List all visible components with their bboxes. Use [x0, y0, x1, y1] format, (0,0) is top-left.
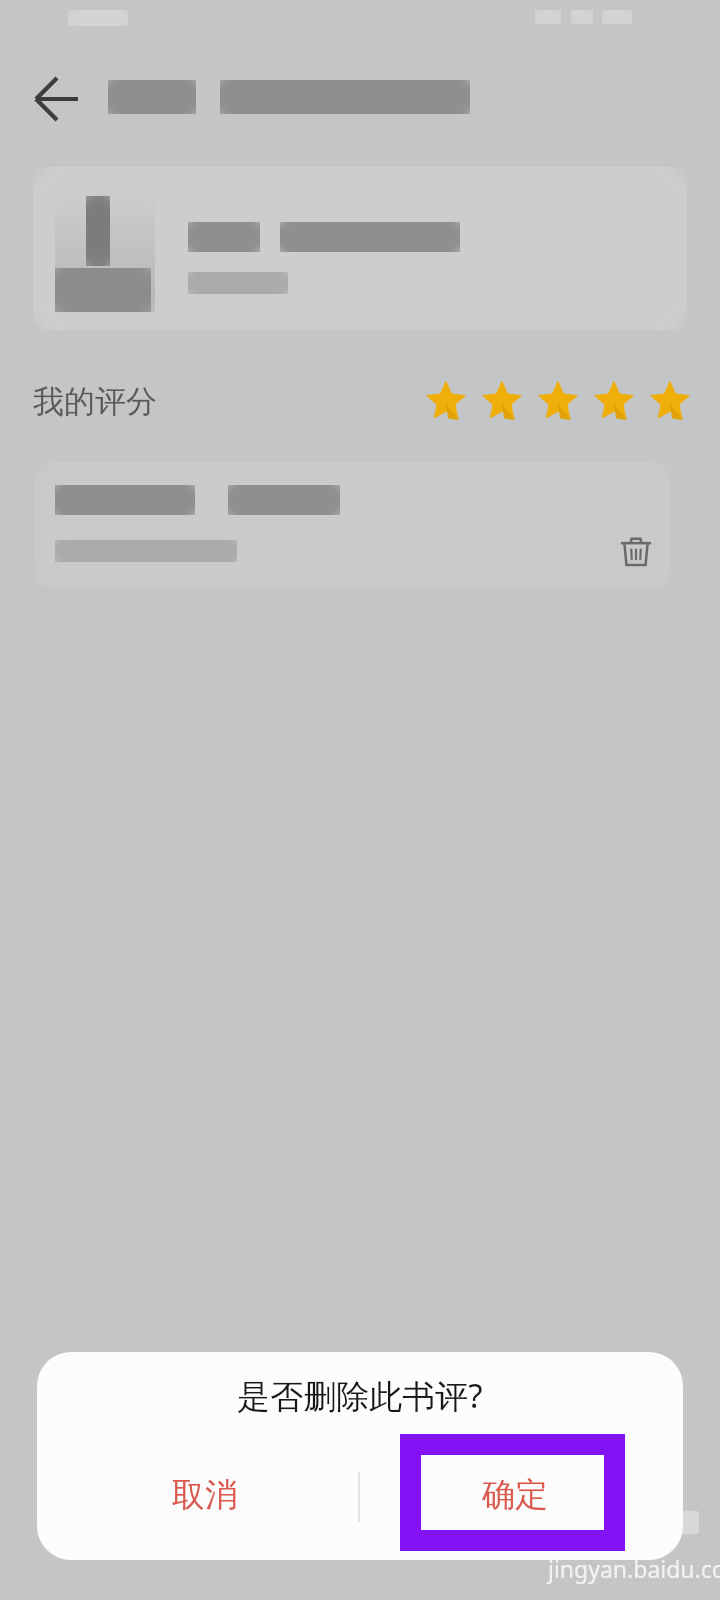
button[interactable]: [33, 167, 687, 330]
staticText: 确定: [482, 1474, 548, 1516]
button[interactable]: 确定: [370, 1440, 660, 1550]
staticText: jingyan.baidu.com: [548, 1553, 720, 1584]
button[interactable]: Delete review: [606, 522, 666, 582]
button[interactable]: [35, 462, 671, 588]
staticText: 取消: [172, 1474, 238, 1516]
button[interactable]: 我的评分: [0, 370, 720, 432]
staticText: 是否删除此书评?: [237, 1373, 483, 1418]
staticText: 我的评分: [33, 382, 157, 421]
button[interactable]: Back: [30, 75, 78, 123]
button[interactable]: 取消: [60, 1440, 350, 1550]
